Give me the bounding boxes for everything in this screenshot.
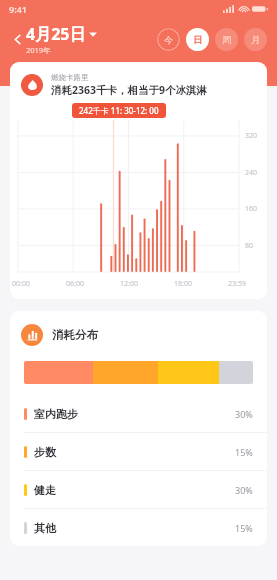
staticText: 其他 — [34, 521, 56, 535]
staticText: 23:59 — [228, 279, 246, 289]
staticText: 00:00 — [12, 279, 30, 289]
staticText: 消耗分布 — [52, 328, 98, 342]
staticText: 日 — [193, 34, 203, 46]
staticText: 周 — [222, 34, 232, 46]
button[interactable]: 日 — [186, 28, 209, 51]
staticText: 消耗2363千卡，相当于9个冰淇淋 — [51, 83, 208, 97]
staticText: 12:00 — [120, 279, 138, 289]
staticText: 2019年 — [26, 45, 51, 55]
staticText: 30% — [235, 408, 253, 420]
staticText: 燃烧卡路里 — [51, 73, 89, 82]
button[interactable]: 4月25日 — [26, 23, 97, 55]
staticText: 15% — [235, 446, 253, 458]
staticText: 步数 — [34, 445, 56, 459]
staticText: 今 — [164, 34, 173, 45]
staticText: 健走 — [34, 483, 56, 497]
staticText: 80 — [245, 241, 267, 251]
button[interactable]: 其他 — [10, 509, 267, 546]
staticText: 月 — [251, 34, 261, 46]
button[interactable]: 月 — [244, 28, 267, 51]
staticText: 242千卡 11: 30-12: 00 — [79, 105, 159, 116]
staticText: 240 — [245, 168, 267, 178]
staticText: 9:41 — [9, 3, 27, 15]
staticText: 320 — [245, 131, 267, 141]
staticText: 06:00 — [66, 279, 84, 289]
staticText: 18:00 — [174, 279, 192, 289]
button[interactable]: Back — [8, 30, 26, 48]
button[interactable]: 周 — [215, 28, 238, 51]
button[interactable]: 今 — [157, 28, 180, 51]
staticText: 15% — [235, 522, 253, 534]
button[interactable]: 室内跑步 — [10, 395, 267, 433]
staticText: 室内跑步 — [34, 407, 78, 421]
staticText: 160 — [245, 204, 267, 214]
button[interactable]: 健走 — [10, 471, 267, 509]
button[interactable]: 步数 — [10, 433, 267, 471]
staticText: 4月25日 — [26, 23, 86, 45]
staticText: 30% — [235, 484, 253, 496]
